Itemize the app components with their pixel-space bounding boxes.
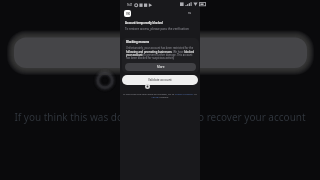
button[interactable]: VK home [124,10,131,17]
button[interactable]: Validate account [122,75,198,85]
staticText: Unfortunately, your account has been res… [126,46,195,59]
staticText: VK [126,12,130,16]
staticText: More [157,65,165,69]
staticText: If you think this was done in error, tap… [0,110,320,124]
staticText: Validate account [148,78,172,82]
staticText: To restore access, please pass the verif… [125,27,189,31]
button[interactable]: More [125,63,196,71]
staticText: ru [188,11,192,15]
staticText: Blocking reasons [126,40,150,44]
staticText: Account temporarily blocked [125,21,163,25]
staticText: 9:41 [127,3,133,7]
button[interactable]: Language [188,11,192,15]
other: Loading [145,84,150,89]
staticText: If you think this was done by mistake, t… [123,92,197,98]
